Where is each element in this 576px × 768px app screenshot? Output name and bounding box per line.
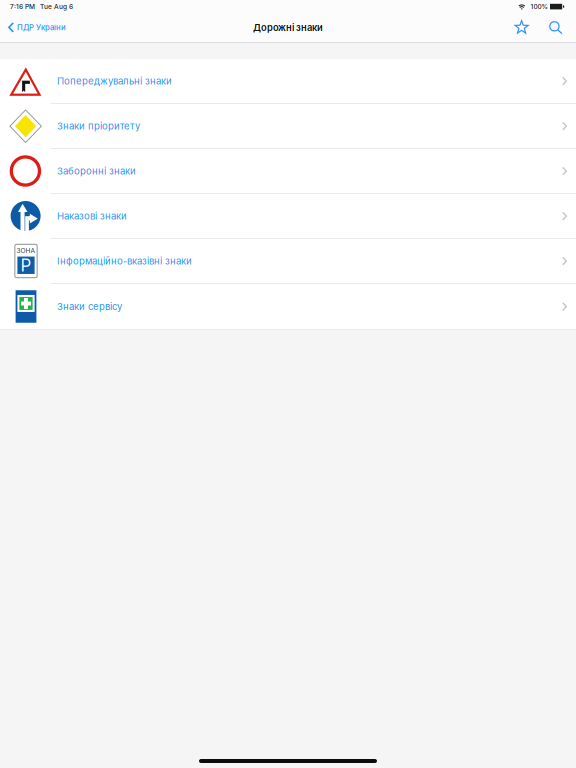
button[interactable]: Наказові знаки bbox=[0, 194, 576, 239]
staticText: Попереджувальні знаки bbox=[57, 75, 172, 87]
staticText: P bbox=[20, 255, 31, 275]
button[interactable]: ЗОНА bbox=[0, 239, 576, 284]
staticText: Знаки сервісу bbox=[57, 301, 122, 312]
staticText: Дорожні знаки bbox=[253, 22, 323, 33]
staticText: Знаки пріоритету bbox=[57, 120, 140, 132]
button[interactable]: Знаки сервісу bbox=[0, 284, 576, 329]
button[interactable]: ПДР України bbox=[0, 13, 72, 42]
button[interactable]: Знаки пріоритету bbox=[0, 104, 576, 149]
button[interactable]: Заборонні знаки bbox=[0, 149, 576, 194]
button[interactable]: Попереджувальні знаки bbox=[0, 59, 576, 104]
staticText: 7:16 PM bbox=[10, 2, 35, 10]
button[interactable]: Search bbox=[540, 14, 571, 41]
staticText: Tue Aug 6 bbox=[40, 2, 73, 10]
staticText: Наказові знаки bbox=[57, 210, 127, 222]
staticText: ПДР України bbox=[17, 23, 66, 32]
staticText: Інформаційно-вказівні знаки bbox=[57, 255, 192, 267]
staticText: 100% bbox=[530, 2, 547, 10]
staticText: ЗОНА bbox=[16, 246, 35, 255]
button[interactable]: Favourites bbox=[505, 13, 540, 41]
staticText: Заборонні знаки bbox=[57, 165, 136, 177]
